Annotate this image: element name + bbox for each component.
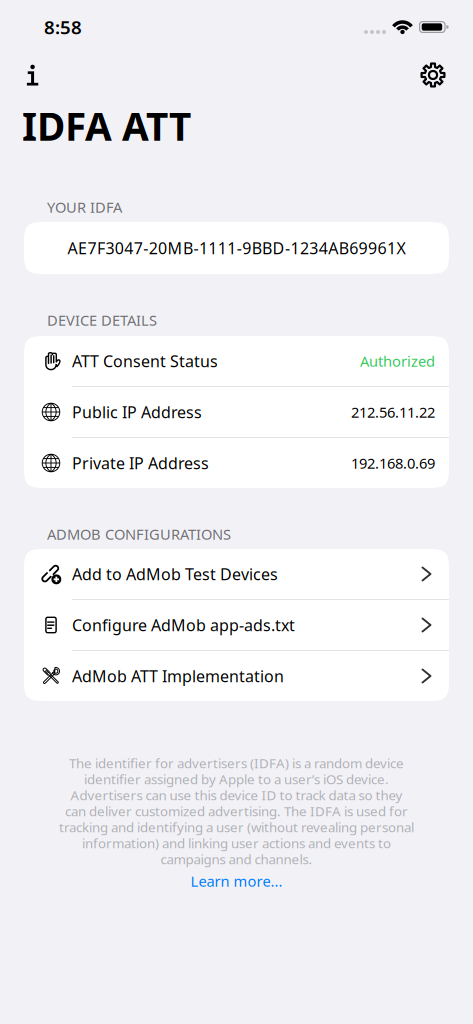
staticText: IDFA ATT [22,100,191,151]
button[interactable]: Settings [413,55,453,95]
staticText: The identifier for advertisers (IDFA) is… [69,754,404,772]
staticText: DEVICE DETAILS [47,310,157,330]
staticText: ATT Consent Status [72,350,218,372]
staticText: can deliver customized advertising. The … [65,802,408,820]
staticText: 212.56.11.22 [351,402,435,422]
staticText: AdMob ATT Implementation [72,665,284,687]
staticText: ADMOB CONFIGURATIONS [47,524,231,544]
staticText: 192.168.0.69 [351,453,435,473]
button[interactable]: Info [13,55,53,95]
staticText: Add to AdMob Test Devices [72,563,278,585]
staticText: identifier assigned by Apple to a user’s… [84,770,389,788]
staticText: Private IP Address [72,452,209,474]
staticText: campaigns and channels. [160,850,312,868]
staticText: Public IP Address [72,401,202,423]
staticText: YOUR IDFA [47,197,122,217]
button[interactable]: Learn more... [166,871,306,891]
staticText: information) and linking user actions an… [82,834,391,852]
staticText: 8:58 [44,15,82,39]
button[interactable]: Configure AdMob app-ads.txt [24,600,449,650]
staticText: tracking and identifying a user (without… [59,818,414,836]
staticText: Configure AdMob app-ads.txt [72,614,295,636]
staticText: Authorized [360,351,435,371]
staticText: AE7F3047-20MB-1111-9BBD-1234AB69961X [68,237,405,259]
button[interactable]: Add to AdMob Test Devices [24,549,449,599]
staticText: Learn more... [190,871,282,891]
button[interactable]: AdMob ATT Implementation [24,651,449,701]
staticText: Advertisers can use this device ID to tr… [70,786,402,804]
